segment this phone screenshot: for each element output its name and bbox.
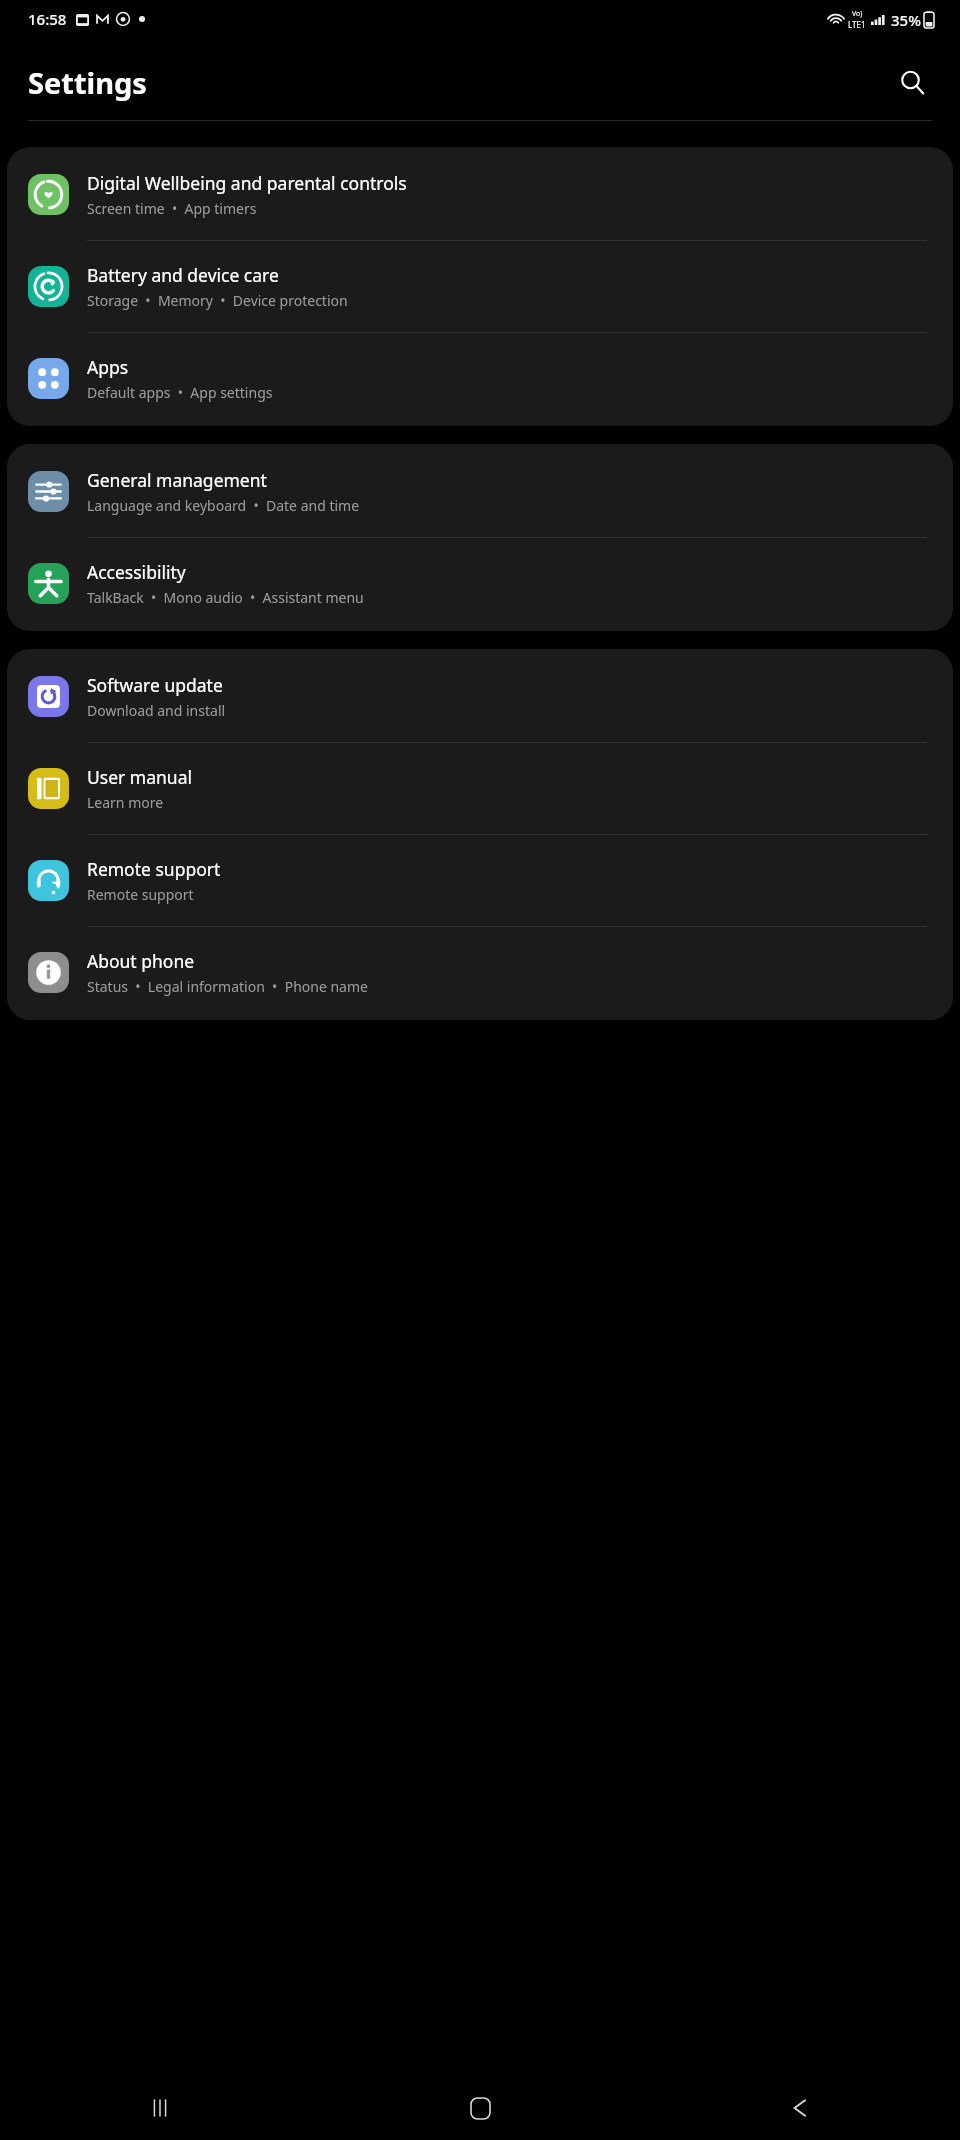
button[interactable]: Apps (7, 333, 953, 424)
button[interactable]: Remote support (7, 835, 953, 926)
staticText: 16:58 (28, 9, 67, 29)
staticText: Learn more (87, 793, 164, 812)
staticText: Download and install (87, 701, 226, 720)
staticText: Remote support (87, 857, 221, 881)
button[interactable]: Recent apps (0, 2076, 320, 2140)
button[interactable]: General management (7, 446, 953, 537)
staticText: Status • Legal information • Phone name (87, 977, 368, 996)
staticText: Vo) (852, 9, 863, 19)
staticText: Screen time • App timers (87, 199, 257, 218)
button[interactable]: Software update (7, 651, 953, 742)
button[interactable]: Digital Wellbeing and parental controls (7, 149, 953, 240)
staticText: Remote support (87, 885, 194, 904)
staticText: 35% (891, 10, 921, 30)
staticText: Settings (28, 63, 147, 102)
staticText: Language and keyboard • Date and time (87, 496, 360, 515)
staticText: Storage • Memory • Device protection (87, 291, 348, 310)
staticText: Software update (87, 673, 223, 697)
button[interactable]: Battery and device care (7, 241, 953, 332)
button[interactable]: Back (640, 2076, 960, 2140)
staticText: LTE1 (848, 19, 866, 30)
staticText: Default apps • App settings (87, 383, 273, 402)
staticText: TalkBack • Mono audio • Assistant menu (87, 588, 364, 607)
button[interactable]: User manual (7, 743, 953, 834)
staticText: Battery and device care (87, 263, 279, 287)
staticText: Digital Wellbeing and parental controls (87, 171, 407, 195)
button[interactable]: Search (890, 60, 934, 104)
button[interactable]: Home (320, 2076, 640, 2140)
staticText: Accessibility (87, 560, 186, 584)
staticText: Apps (87, 355, 129, 379)
staticText: User manual (87, 765, 192, 789)
button[interactable]: About phone (7, 927, 953, 1018)
staticText: About phone (87, 949, 195, 973)
button[interactable]: Accessibility (7, 538, 953, 629)
staticText: General management (87, 468, 267, 492)
